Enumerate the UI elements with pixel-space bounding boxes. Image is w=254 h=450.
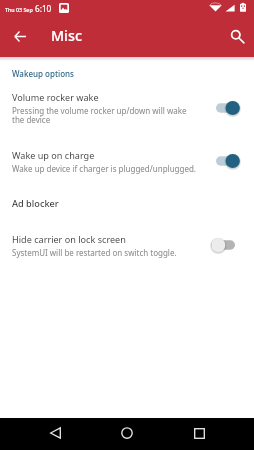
button[interactable]: Switch on [206, 151, 240, 171]
button[interactable]: Hide carrier on lock screen [0, 221, 254, 269]
staticText: Ad blocker [12, 197, 59, 210]
button[interactable]: Navigate up [6, 22, 34, 50]
button[interactable]: Volume rocker wake [0, 79, 254, 137]
staticText: Wakeup options [12, 68, 74, 79]
staticText: Thu 03 Sep [5, 6, 33, 13]
button[interactable]: Home [114, 420, 140, 446]
staticText: Wake up device if charger is plugged/unp… [12, 163, 196, 174]
staticText: Pressing the volume rocker up/down will … [12, 105, 198, 126]
staticText: SystemUI will be restarted on switch tog… [12, 247, 177, 258]
button[interactable]: Back [42, 420, 68, 446]
button[interactable]: Recent apps [186, 420, 212, 446]
button[interactable]: Wake up on charge [0, 137, 254, 185]
staticText: Hide carrier on lock screen [12, 233, 126, 245]
button[interactable]: Switch off [206, 235, 240, 255]
staticText: Volume rocker wake [12, 91, 99, 103]
staticText: 6:10 [35, 3, 52, 14]
button[interactable]: Search [223, 22, 251, 50]
button[interactable]: Switch on [206, 98, 240, 118]
staticText: Wake up on charge [12, 149, 95, 161]
staticText: Misc [51, 26, 82, 45]
